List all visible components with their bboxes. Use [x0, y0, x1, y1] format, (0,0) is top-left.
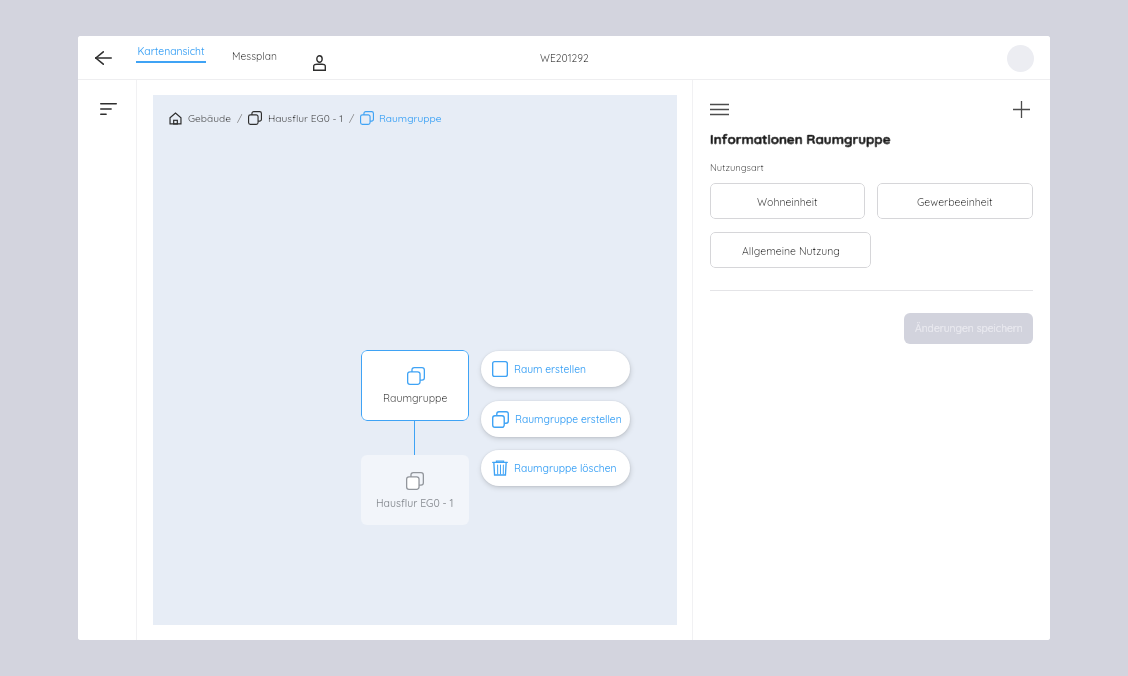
staticText: Gebäude — [188, 112, 232, 125]
staticText: Raum erstellen — [514, 363, 586, 376]
staticText: Gewerbeeinheit — [917, 195, 993, 208]
button[interactable]: Messplan — [228, 43, 281, 69]
button[interactable]: Add — [1009, 97, 1033, 121]
button[interactable]: Back — [83, 38, 123, 78]
staticText: Raumgruppe löschen — [514, 462, 617, 475]
staticText: Kartenansicht — [137, 45, 205, 58]
button[interactable]: Account — [305, 49, 333, 77]
staticText: Informationen Raumgruppe — [710, 131, 891, 148]
staticText: Raumgruppe — [379, 112, 442, 125]
staticText: Messplan — [232, 50, 277, 63]
button[interactable]: Menu — [710, 97, 734, 121]
staticText: Nutzungsart — [710, 162, 764, 174]
staticText: Änderungen speichern — [915, 322, 1023, 335]
staticText: Raumgruppe erstellen — [515, 413, 622, 426]
staticText: Hausflur EG0 - 1 — [376, 496, 454, 509]
staticText: Informationen Raumgruppe — [710, 131, 891, 148]
staticText: Raumgruppe — [383, 391, 448, 404]
button[interactable]: Gewerbeeinheit — [877, 183, 1033, 219]
button[interactable]: Filter — [93, 92, 123, 126]
button[interactable]: Raumgruppe — [361, 350, 469, 421]
staticText: / — [237, 112, 243, 125]
staticText: WE201292 — [540, 52, 589, 65]
button[interactable]: Raum erstellen — [481, 351, 630, 387]
button[interactable]: Wohneinheit — [710, 183, 865, 219]
staticText: Hausflur EG0 - 1 — [268, 112, 344, 125]
button[interactable]: Kartenansicht — [136, 45, 206, 63]
button[interactable]: Profile — [1007, 45, 1034, 72]
staticText: Allgemeine Nutzung — [742, 244, 840, 257]
staticText: Wohneinheit — [757, 195, 818, 208]
button[interactable]: Raumgruppe erstellen — [481, 401, 630, 437]
button[interactable]: Hausflur EG0 - 1 — [361, 455, 469, 525]
staticText: / — [349, 112, 355, 125]
button[interactable]: Allgemeine Nutzung — [710, 232, 871, 268]
button[interactable]: Raumgruppe löschen — [481, 450, 630, 486]
button[interactable]: Änderungen speichern — [904, 313, 1033, 344]
